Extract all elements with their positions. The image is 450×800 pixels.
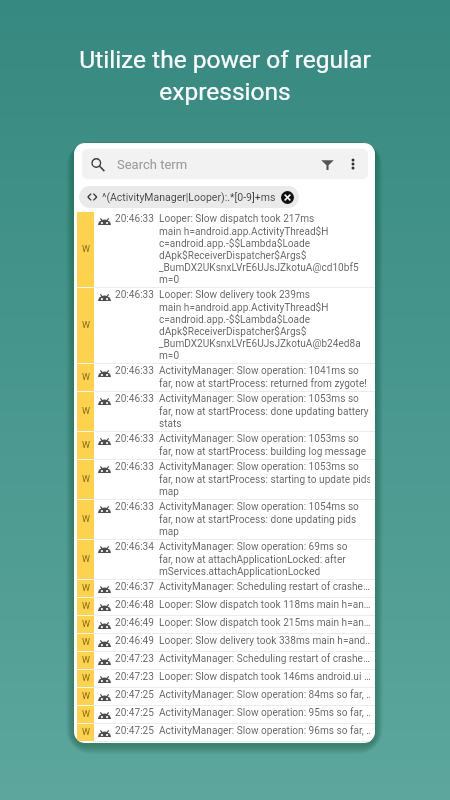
staticText: ActivityManager: Scheduling restart of c… — [159, 581, 370, 593]
staticText: 20:46:33 — [115, 501, 154, 513]
staticText: ActivityManager: Slow operation: 96ms so… — [159, 725, 370, 737]
staticText: 20:46:33 — [115, 213, 154, 225]
staticText: ^(ActivityManager|Looper):.*[0-9]+ms — [102, 191, 276, 203]
staticText: 20:46:33 — [115, 289, 154, 301]
button[interactable]: W — [74, 688, 375, 705]
button[interactable]: W — [74, 540, 375, 579]
button[interactable]: Search — [90, 157, 105, 172]
button[interactable]: More options — [346, 157, 360, 171]
staticText: ActivityManager: Slow operation: 1053ms … — [159, 461, 370, 497]
staticText: 20:47:25 — [115, 689, 154, 701]
button[interactable]: W — [74, 392, 375, 431]
button[interactable]: W — [74, 598, 375, 615]
button[interactable]: Clear filter — [281, 191, 294, 204]
staticText: Looper: Slow dispatch took 118ms main h=… — [159, 599, 370, 611]
staticText: W — [82, 440, 90, 451]
staticText: ActivityManager: Slow operation: 1053ms … — [159, 393, 369, 429]
staticText: Looper: Slow delivery took 239ms main h=… — [159, 289, 361, 361]
staticText: ActivityManager: Slow operation: 1041ms … — [159, 365, 367, 389]
button[interactable]: W — [74, 212, 375, 287]
staticText: 20:46:34 — [115, 541, 154, 553]
staticText: W — [82, 601, 90, 612]
staticText: W — [82, 727, 90, 738]
button[interactable]: W — [74, 652, 375, 669]
staticText: Utilize the power of regular expressions — [26, 45, 424, 106]
staticText: ActivityManager: Slow operation: 84ms so… — [159, 689, 370, 701]
staticText: ActivityManager: Slow operation: 95ms so… — [159, 707, 370, 719]
button[interactable]: Filter — [320, 157, 335, 172]
staticText: ActivityManager: Slow operation: 1054ms … — [159, 501, 359, 537]
staticText: W — [82, 406, 90, 417]
staticText: W — [82, 372, 90, 383]
staticText: 20:47:23 — [115, 671, 154, 683]
staticText: W — [82, 244, 90, 255]
staticText: W — [82, 583, 90, 594]
staticText: 20:47:25 — [115, 707, 154, 719]
button[interactable]: W — [74, 364, 375, 391]
button[interactable]: W — [74, 670, 375, 687]
button[interactable]: W — [74, 500, 375, 539]
staticText: 20:47:25 — [115, 725, 154, 737]
staticText: ActivityManager: Slow operation: 1053ms … — [159, 433, 366, 457]
staticText: W — [82, 619, 90, 630]
button[interactable]: W — [74, 706, 375, 723]
staticText: 20:47:23 — [115, 653, 154, 665]
staticText: 20:46:33 — [115, 365, 154, 377]
staticText: 20:46:49 — [115, 635, 154, 647]
button[interactable]: ^(ActivityManager|Looper):.*[0-9]+ms — [79, 186, 299, 208]
staticText: 20:46:33 — [115, 393, 154, 405]
staticText: Looper: Slow dispatch took 215ms main h=… — [159, 617, 370, 629]
staticText: W — [82, 655, 90, 666]
staticText: W — [82, 709, 90, 720]
staticText: W — [82, 691, 90, 702]
staticText: Looper: Slow delivery took 338ms main h=… — [159, 635, 370, 647]
button[interactable]: W — [74, 724, 375, 741]
staticText: W — [82, 514, 90, 525]
staticText: Search term — [117, 157, 188, 172]
button[interactable]: W — [74, 432, 375, 459]
staticText: W — [82, 554, 90, 565]
staticText: ActivityManager: Scheduling restart of c… — [159, 653, 370, 665]
staticText: W — [82, 673, 90, 684]
staticText: W — [82, 320, 90, 331]
staticText: 20:46:48 — [115, 599, 154, 611]
staticText: W — [82, 637, 90, 648]
button[interactable]: W — [74, 580, 375, 597]
button[interactable]: W — [74, 634, 375, 651]
staticText: 20:46:33 — [115, 461, 154, 473]
staticText: Looper: Slow dispatch took 146ms android… — [159, 671, 370, 683]
staticText: 20:46:33 — [115, 433, 154, 445]
staticText: Looper: Slow dispatch took 217ms main h=… — [159, 213, 359, 285]
button[interactable]: W — [74, 288, 375, 363]
staticText: ActivityManager: Slow operation: 69ms so… — [159, 541, 348, 577]
staticText: W — [82, 474, 90, 485]
button[interactable]: W — [74, 460, 375, 499]
staticText: 20:46:49 — [115, 617, 154, 629]
button[interactable]: W — [74, 616, 375, 633]
staticText: 20:46:37 — [115, 581, 154, 593]
